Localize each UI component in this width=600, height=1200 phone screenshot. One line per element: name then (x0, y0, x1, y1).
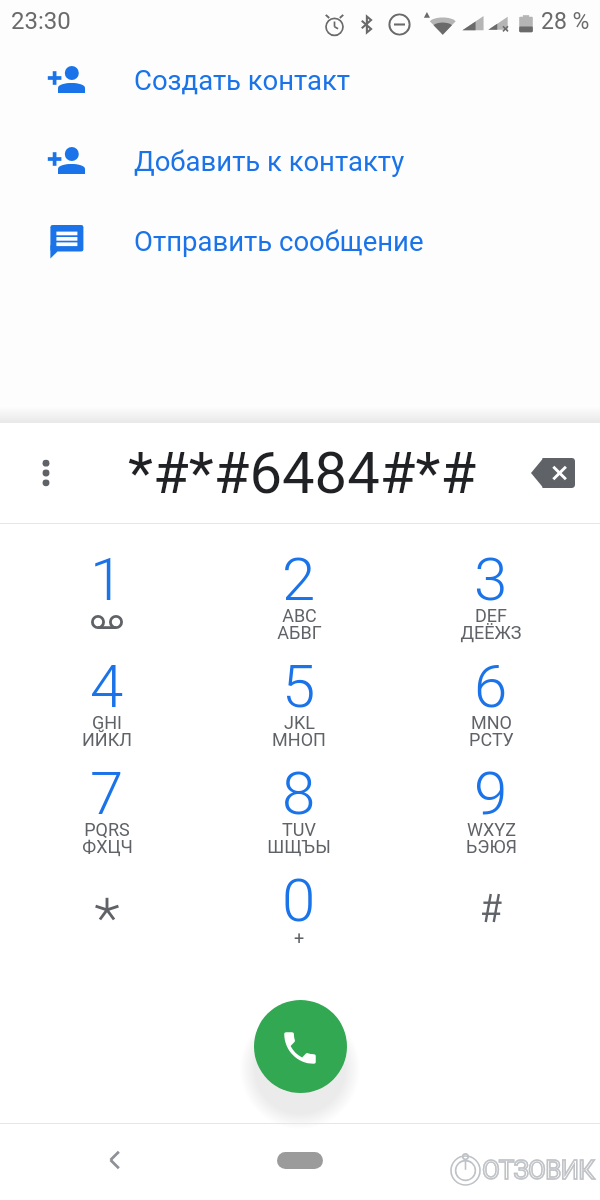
button[interactable]: Call (254, 1000, 347, 1093)
staticText: РСТУ (469, 729, 514, 750)
button[interactable] (395, 854, 587, 961)
staticText: ШЩЪЫ (267, 836, 331, 857)
button[interactable]: Отправить сообщение (0, 202, 600, 282)
staticText: 28 % (541, 8, 590, 35)
button[interactable]: 1 (11, 533, 203, 640)
button[interactable]: 6 (395, 640, 587, 747)
staticText: 9 (474, 758, 508, 828)
staticText: TUV (282, 819, 316, 840)
button[interactable]: Backspace (522, 442, 584, 504)
staticText: MNO (471, 712, 512, 733)
button[interactable]: More options (18, 445, 74, 501)
staticText: ОТЗОВИК (482, 1155, 595, 1185)
staticText: PQRS (84, 819, 130, 840)
staticText: 1 (90, 544, 124, 614)
staticText: 5 (282, 651, 316, 721)
staticText: WXYZ (467, 819, 516, 840)
staticText: JKL (284, 712, 315, 733)
staticText: 23:30 (11, 7, 71, 35)
staticText: 8 (282, 758, 316, 828)
staticText: + (294, 927, 305, 948)
staticText: Добавить к контакту (134, 145, 405, 177)
staticText: ЬЭЮЯ (466, 836, 517, 857)
button[interactable]: Back (85, 1130, 145, 1190)
staticText: 2 (282, 544, 316, 614)
staticText: 3 (474, 544, 508, 614)
button[interactable]: Создать контакт (0, 41, 600, 121)
staticText: GHI (92, 712, 122, 733)
staticText: Создать контакт (134, 64, 351, 96)
staticText: ABC (282, 605, 317, 626)
staticText: 0 (282, 865, 316, 935)
button[interactable]: 9 (395, 747, 587, 854)
button[interactable]: 2 (203, 533, 395, 640)
button[interactable] (11, 854, 203, 961)
staticText: МНОП (272, 729, 326, 750)
button[interactable]: 8 (203, 747, 395, 854)
staticText: *#*#6484#*# (128, 439, 477, 507)
button[interactable]: Home (265, 1138, 335, 1182)
staticText: ИЙКЛ (82, 729, 132, 750)
staticText: ФХЦЧ (82, 836, 133, 857)
button[interactable]: 4 (11, 640, 203, 747)
button[interactable]: 7 (11, 747, 203, 854)
staticText: 4 (90, 651, 124, 721)
button[interactable]: 0 (203, 854, 395, 961)
staticText: DEF (475, 605, 507, 626)
staticText: 6 (474, 651, 508, 721)
staticText: АБВГ (277, 622, 322, 643)
staticText: ДЕЁЖЗ (460, 622, 522, 643)
button[interactable]: 3 (395, 533, 587, 640)
button[interactable]: Добавить к контакту (0, 122, 600, 202)
staticText: Отправить сообщение (134, 225, 424, 257)
staticText: 7 (90, 758, 124, 828)
button[interactable]: 5 (203, 640, 395, 747)
